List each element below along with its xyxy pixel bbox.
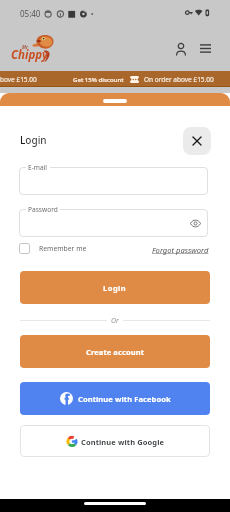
staticText: Continue with Google	[81, 437, 165, 447]
button[interactable]: Menu	[193, 36, 217, 60]
button[interactable]: Continue with Facebook	[20, 382, 210, 415]
button[interactable]: Login	[20, 271, 210, 304]
staticText: Or	[111, 316, 119, 325]
button[interactable]: Continue with Google	[20, 425, 210, 457]
staticText: Mr	[22, 44, 28, 50]
staticText: E-mail	[28, 163, 48, 172]
button[interactable]: Create account	[20, 335, 210, 368]
staticText: Remember me	[39, 244, 87, 253]
staticText: Chippy	[11, 47, 48, 63]
button[interactable]: Account	[169, 37, 193, 61]
staticText: Login	[20, 133, 47, 147]
staticText: On order above £15.00	[144, 75, 214, 84]
button[interactable]	[19, 167, 208, 195]
button[interactable]	[19, 209, 208, 237]
staticText: On order above £15.00	[0, 75, 37, 84]
button[interactable]: Remember me	[19, 243, 87, 254]
staticText: Continue with Facebook	[78, 394, 171, 404]
button[interactable]: Show password	[186, 214, 204, 232]
staticText: 05:40	[20, 8, 41, 19]
staticText: Create account	[86, 347, 144, 357]
staticText: Password	[28, 205, 58, 214]
staticText: Get 15% discount	[73, 75, 124, 83]
button[interactable]: Close	[183, 127, 211, 155]
staticText: Login	[103, 283, 127, 293]
button[interactable]: Forgot password	[152, 245, 209, 255]
